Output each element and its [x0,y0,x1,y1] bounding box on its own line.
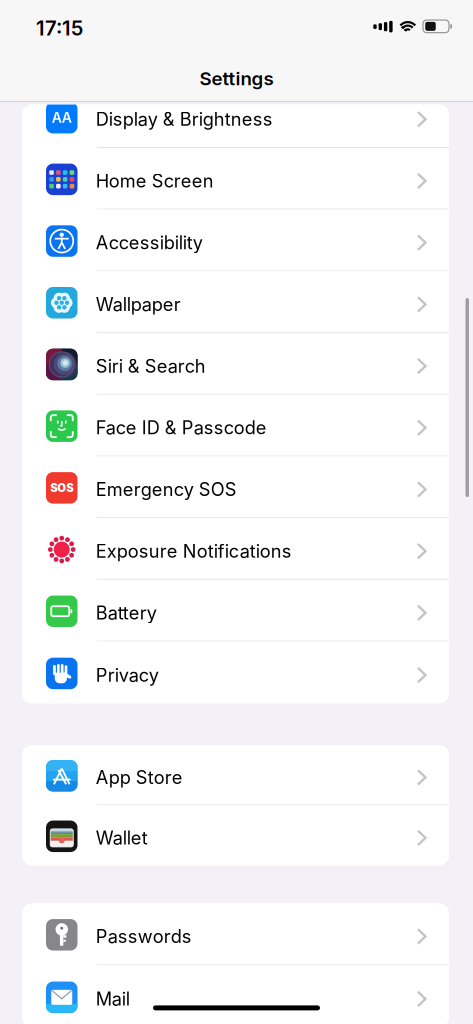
button[interactable]: Passwords [22,903,449,965]
button[interactable]: App Store [22,745,449,805]
staticText: Wallet [96,827,148,849]
button[interactable]: Wallet [22,805,449,865]
button[interactable]: AA [22,86,449,148]
staticText: Face ID & Passcode [96,417,267,439]
staticText: Wallpaper [96,293,181,315]
staticText: Emergency SOS [96,478,237,500]
button[interactable]: Exposure Notifications [22,518,449,580]
staticText: Display & Brightness [96,108,273,130]
staticText: 17:15 [36,16,83,40]
staticText: Battery [96,602,157,624]
button[interactable]: Privacy [22,642,449,703]
button[interactable]: SOS [22,456,449,518]
staticText: Passwords [96,925,192,947]
staticText: SOS [50,481,73,495]
staticText: Privacy [96,664,159,686]
button[interactable]: Wallpaper [22,271,449,333]
staticText: App Store [96,766,183,788]
staticText: AA [52,109,72,126]
button[interactable]: Accessibility [22,210,449,271]
button[interactable]: Siri & Search [22,333,449,395]
staticText: Settings [199,67,273,90]
button[interactable]: Mail [22,965,449,1024]
staticText: Siri & Search [96,355,206,377]
staticText: Mail [96,988,130,1010]
staticText: Home Screen [96,170,214,192]
button[interactable]: Battery [22,580,449,642]
button[interactable]: Home Screen [22,148,449,210]
button[interactable]: Face ID & Passcode [22,395,449,456]
staticText: Accessibility [96,232,203,254]
staticText: Exposure Notifications [96,540,292,562]
